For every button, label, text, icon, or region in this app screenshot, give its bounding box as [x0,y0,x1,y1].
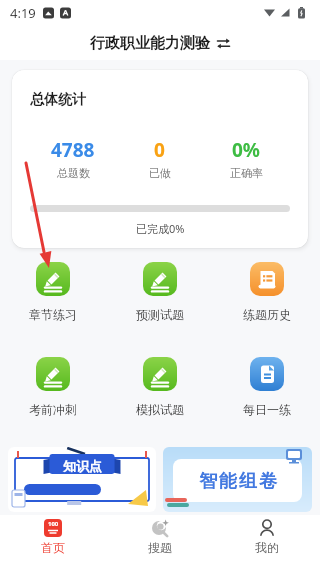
staticText: 100 [48,520,59,528]
staticText: 练题历史 [243,307,291,322]
button[interactable]: 100 [0,515,106,568]
staticText: 已完成0% [136,221,185,236]
button[interactable]: 预测试题 [106,262,213,322]
staticText: 考前冲刺 [29,402,77,417]
button[interactable]: 章节练习 [0,262,106,322]
staticText: 首页 [41,540,65,555]
staticText: 行政职业能力测验 [90,34,210,53]
staticText: 4:19 [10,4,36,22]
button[interactable]: 考前冲刺 [0,357,106,417]
staticText: 章节练习 [29,307,77,322]
staticText: 模拟试题 [136,402,184,417]
button[interactable]: 我的 [213,515,320,568]
button[interactable]: 模拟试题 [106,357,213,417]
staticText: 我的 [255,540,279,555]
staticText: 搜题 [148,540,172,555]
staticText: 4788 [51,137,95,163]
staticText: 0% [232,137,261,163]
button[interactable] [217,38,230,49]
staticText: 正确率 [230,166,263,180]
staticText: 总题数 [57,166,90,180]
staticText: 总体统计 [30,91,86,109]
button[interactable]: 每日一练 [213,357,320,417]
button[interactable]: 智能组卷 [163,447,312,512]
button[interactable]: 练题历史 [213,262,320,322]
staticText: 已做 [149,166,171,180]
button[interactable]: 搜题 [106,515,213,568]
staticText: 每日一练 [243,402,291,417]
button[interactable]: 知识点 [8,447,156,512]
staticText: 预测试题 [136,307,184,322]
button[interactable]: 总体统计 [30,70,290,248]
staticText: 知识点 [63,458,102,474]
staticText: 智能组卷 [198,470,278,493]
staticText: 0 [154,137,165,163]
